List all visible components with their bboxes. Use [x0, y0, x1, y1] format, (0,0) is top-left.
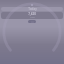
button[interactable]: Today [1, 7, 63, 11]
button[interactable]: 7,420 [1, 12, 63, 19]
staticText: steps [30, 16, 35, 19]
button[interactable]: More [28, 20, 36, 23]
staticText: 7,420 [28, 12, 36, 16]
staticText: Today [28, 7, 37, 11]
button[interactable]: Status [1, 3, 63, 6]
